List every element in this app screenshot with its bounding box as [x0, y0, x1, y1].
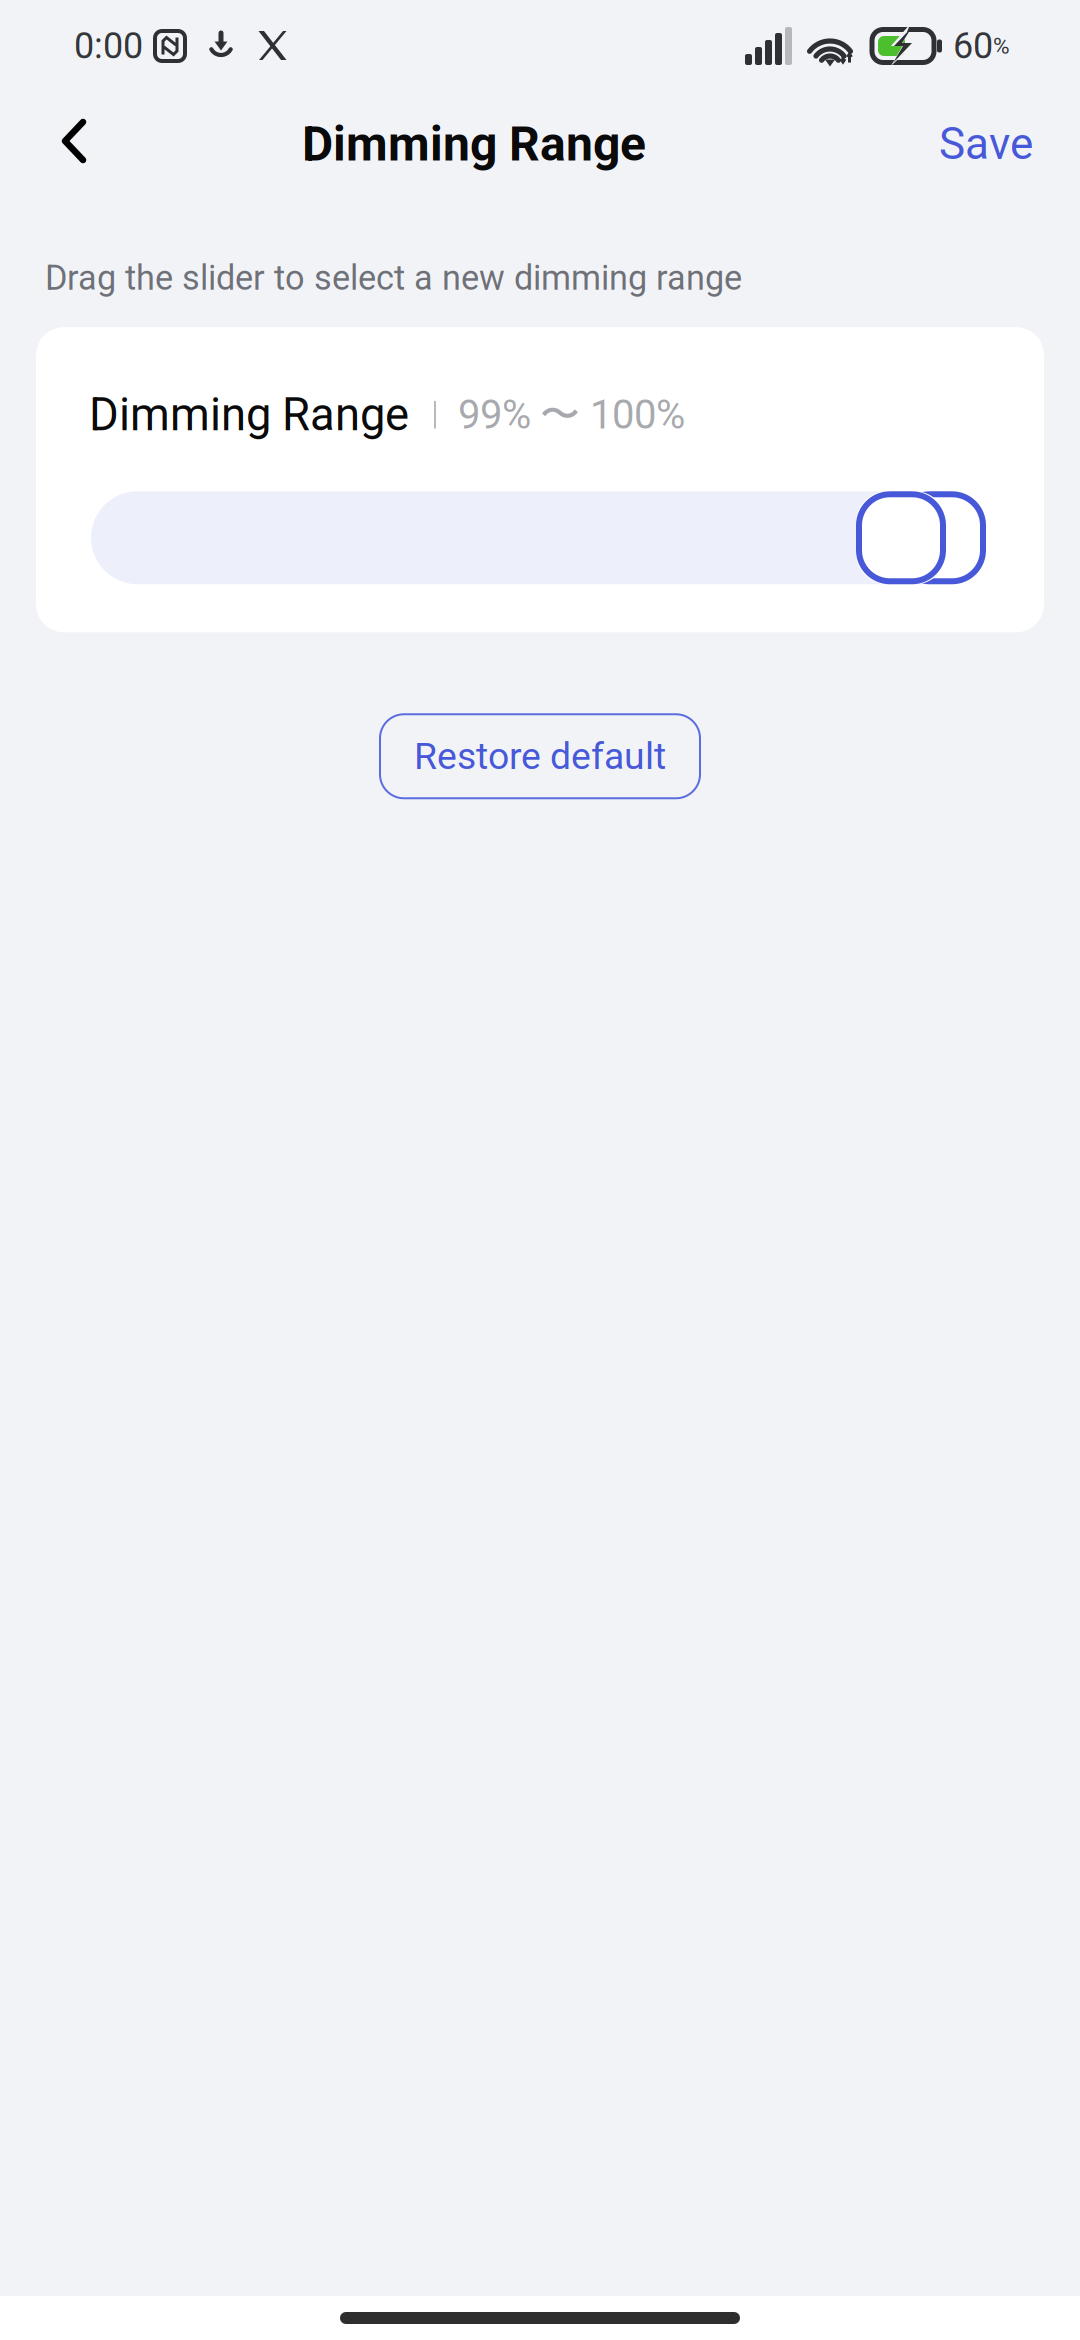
- staticText: Drag the slider to select a new dimming …: [45, 258, 742, 298]
- button[interactable]: Save: [920, 94, 1052, 194]
- staticText: 〜: [540, 389, 580, 440]
- button[interactable]: Dimming range slider, 99% to 100%: [91, 491, 986, 584]
- staticText: Save: [939, 118, 1033, 170]
- staticText: %: [993, 33, 1010, 59]
- staticText: Dimming Range: [89, 388, 409, 441]
- button[interactable]: Restore default: [380, 714, 700, 798]
- staticText: 60: [953, 25, 993, 67]
- staticText: 100%: [590, 391, 685, 438]
- staticText: Dimming Range: [302, 116, 646, 172]
- staticText: 99%: [458, 391, 531, 438]
- staticText: Restore default: [414, 734, 666, 778]
- staticText: 0:00: [74, 25, 143, 67]
- button[interactable]: Back: [30, 94, 118, 194]
